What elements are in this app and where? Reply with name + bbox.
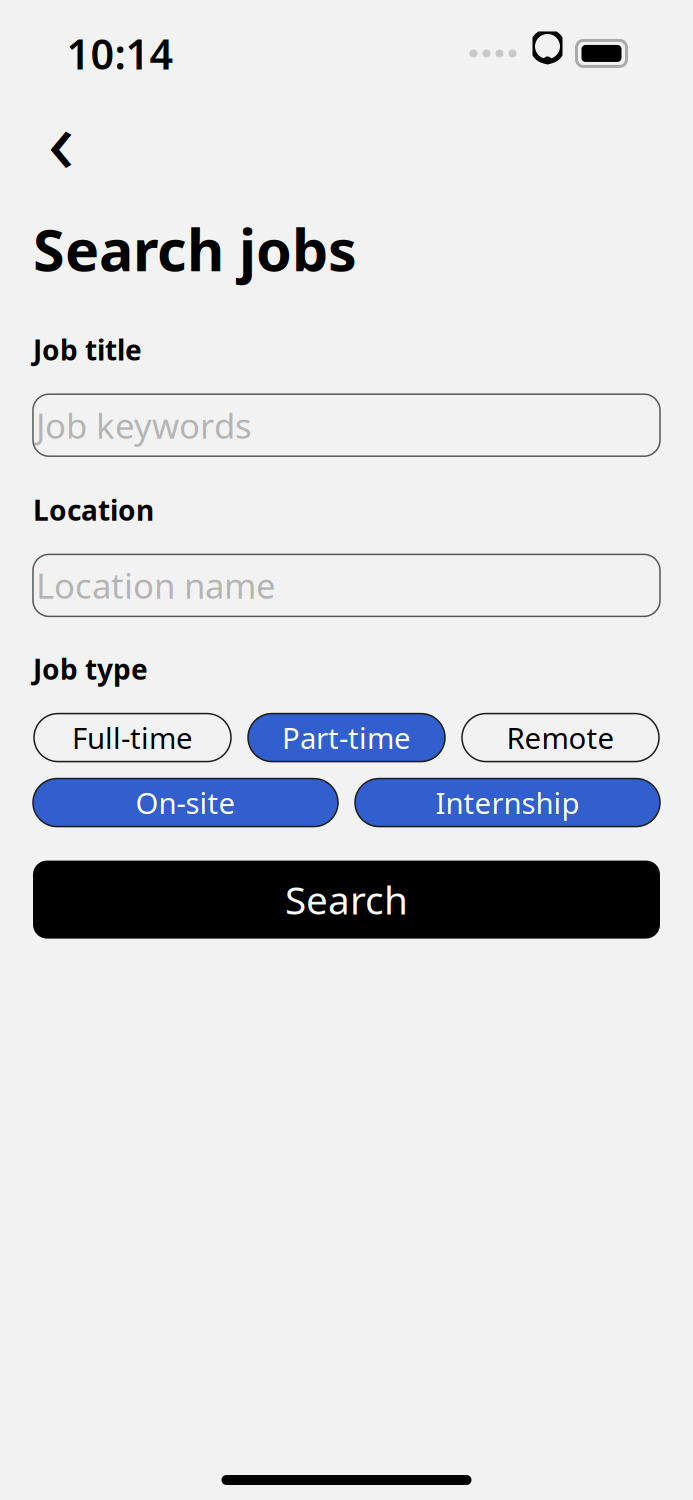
button[interactable]: On-site [33, 779, 338, 827]
staticText: Job type [33, 650, 148, 688]
staticText: ‹ [47, 80, 74, 197]
button[interactable]: Back [33, 111, 89, 167]
staticText: Job title [33, 331, 142, 368]
button[interactable]: Part-time [248, 714, 445, 762]
button[interactable]: Job keywords [33, 394, 660, 456]
button[interactable]: Internship [355, 779, 660, 827]
staticText: Part-time [282, 718, 411, 757]
button[interactable]: Full-time [34, 714, 231, 762]
staticText: Search [285, 874, 408, 925]
staticText: Full-time [72, 718, 193, 757]
staticText: Search jobs [33, 211, 357, 287]
button[interactable]: Location name [33, 554, 660, 616]
staticText: Job keywords [36, 402, 252, 448]
staticText: Remote [506, 718, 614, 757]
staticText: 10:14 [66, 26, 173, 81]
staticText: Location name [36, 562, 276, 608]
staticText: On-site [135, 783, 235, 822]
button[interactable]: Remote [462, 714, 659, 762]
staticText: Location [33, 491, 154, 528]
button[interactable]: Search [33, 861, 660, 939]
staticText: Internship [435, 783, 579, 822]
